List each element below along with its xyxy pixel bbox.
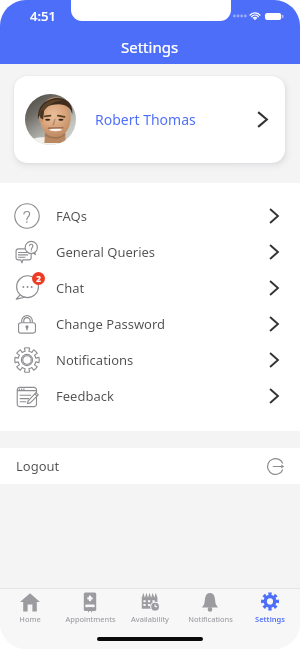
button[interactable]: 2 bbox=[0, 270, 300, 306]
staticText: Notifications bbox=[188, 614, 233, 624]
staticText: Settings bbox=[121, 37, 179, 57]
button[interactable]: Change Password bbox=[0, 306, 300, 342]
button[interactable]: Notifications bbox=[180, 589, 240, 624]
staticText: Availability bbox=[131, 614, 169, 624]
staticText: Appointments bbox=[65, 614, 116, 624]
button[interactable]: General Queries bbox=[0, 234, 300, 270]
staticText: Home bbox=[19, 614, 41, 624]
button[interactable]: Robert Thomas bbox=[14, 76, 285, 163]
staticText: 4:51 bbox=[30, 7, 56, 25]
button[interactable]: Notifications bbox=[0, 342, 300, 378]
other: Logout bbox=[267, 458, 284, 475]
staticText: Notifications bbox=[56, 351, 134, 369]
button[interactable]: Home bbox=[0, 589, 60, 624]
staticText: FAQs bbox=[56, 207, 87, 225]
staticText: Logout bbox=[16, 457, 60, 475]
staticText: Chat bbox=[56, 279, 85, 297]
button[interactable]: Settings bbox=[240, 589, 300, 624]
staticText: Robert Thomas bbox=[95, 110, 196, 129]
button[interactable]: FAQs bbox=[0, 198, 300, 234]
button[interactable]: Logout bbox=[0, 448, 300, 484]
staticText: 2 bbox=[36, 273, 41, 284]
staticText: Settings bbox=[255, 614, 285, 624]
staticText: Feedback bbox=[56, 387, 114, 405]
button[interactable]: Availability bbox=[120, 589, 180, 624]
button[interactable]: Feedback bbox=[0, 378, 300, 414]
staticText: Change Password bbox=[56, 315, 166, 333]
staticText: General Queries bbox=[56, 243, 156, 261]
button[interactable]: Appointments bbox=[60, 589, 120, 624]
